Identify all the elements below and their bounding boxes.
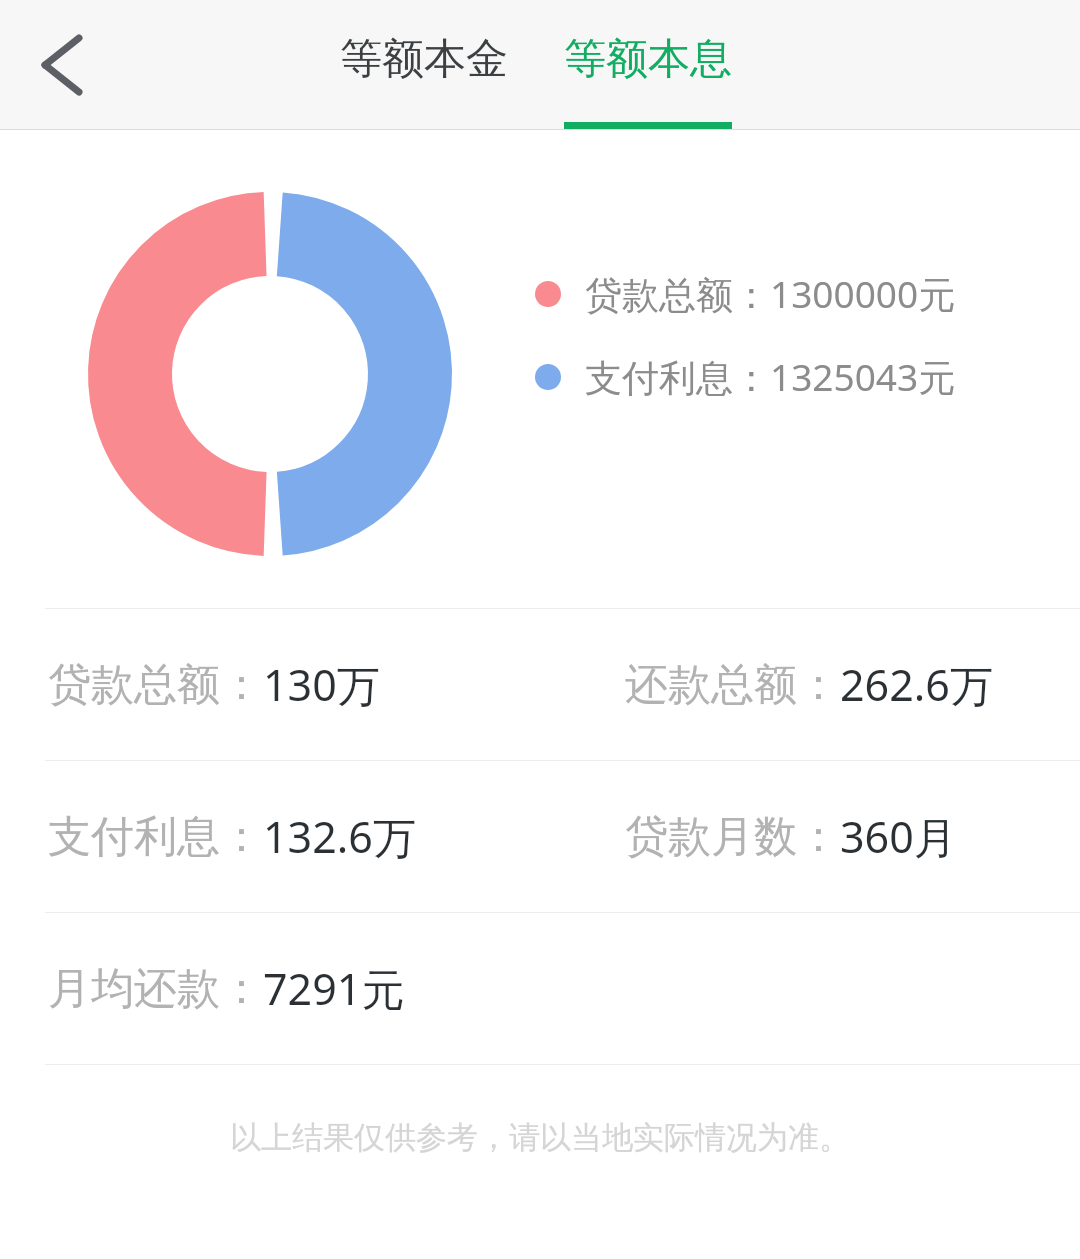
- staticText: 等额本金: [340, 33, 508, 86]
- staticText: 贷款总额：: [48, 658, 263, 712]
- staticText: 130万: [263, 655, 380, 714]
- staticText: 贷款月数：: [625, 810, 840, 864]
- button[interactable]: 等额本息: [564, 0, 732, 130]
- staticText: 支付利息：: [48, 810, 263, 864]
- button[interactable]: 等额本金: [340, 0, 508, 130]
- staticText: 贷款总额：1300000元: [585, 268, 956, 319]
- button[interactable]: Back: [0, 0, 124, 130]
- staticText: 支付利息：1325043元: [585, 351, 956, 402]
- staticText: 以上结果仅供参考，请以当地实际情况为准。: [0, 1118, 1080, 1157]
- staticText: 7291元: [263, 959, 405, 1018]
- staticText: 360月: [840, 807, 957, 866]
- staticText: 还款总额：: [625, 658, 840, 712]
- staticText: 等额本息: [564, 33, 732, 86]
- staticText: 262.6万: [840, 655, 993, 714]
- staticText: 132.6万: [263, 807, 416, 866]
- staticText: 月均还款：: [48, 962, 263, 1016]
